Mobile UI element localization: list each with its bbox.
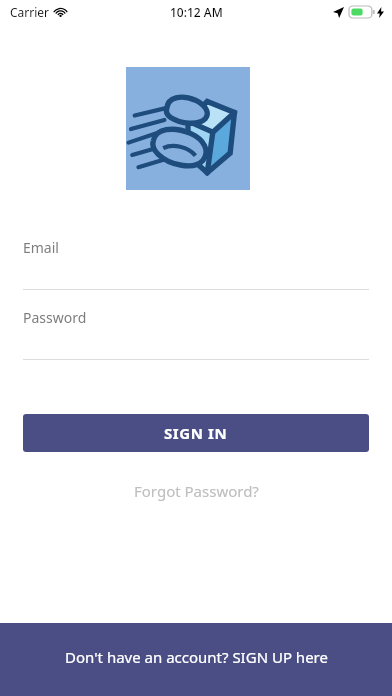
- staticText: SIGN IN: [164, 423, 228, 443]
- staticText: Password: [23, 308, 87, 327]
- staticText: Carrier: [10, 4, 50, 20]
- staticText: Don't have an account? SIGN UP here: [65, 647, 328, 667]
- staticText: Email: [23, 238, 59, 257]
- button[interactable]: SIGN IN: [23, 414, 369, 452]
- button[interactable]: Don't have an account? SIGN UP here: [0, 623, 392, 696]
- staticText: Forgot Password?: [134, 481, 259, 501]
- button[interactable]: Forgot Password?: [122, 477, 271, 505]
- staticText: 10:12 AM: [170, 4, 223, 20]
